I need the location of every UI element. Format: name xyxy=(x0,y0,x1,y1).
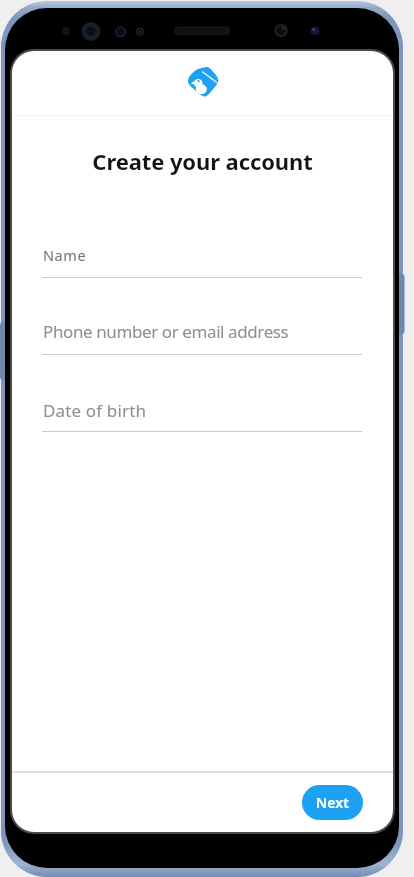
staticText: Next xyxy=(316,793,349,812)
staticText: Phone number or email address xyxy=(43,320,289,343)
staticText: Date of birth xyxy=(43,399,147,422)
button[interactable]: Name xyxy=(42,231,362,278)
staticText: Name xyxy=(43,245,87,265)
staticText: Create your account xyxy=(12,146,393,176)
button[interactable]: Phone number or email address xyxy=(42,308,362,355)
button[interactable]: Date of birth xyxy=(42,385,362,432)
button[interactable]: Next xyxy=(302,785,363,820)
